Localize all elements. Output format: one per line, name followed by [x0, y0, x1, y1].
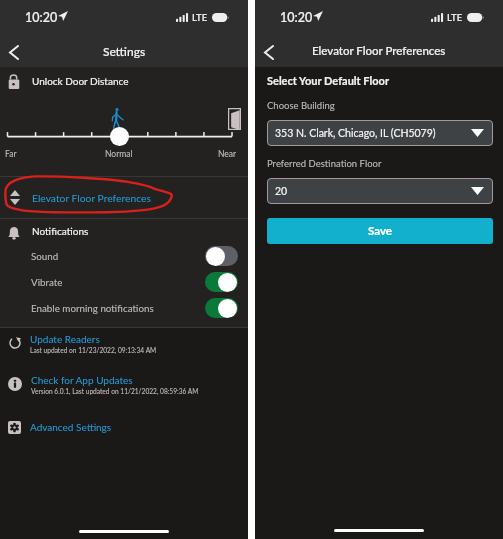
- button[interactable]: 20: [267, 178, 493, 204]
- staticText: Unlock Door Distance: [32, 75, 129, 87]
- button[interactable]: Save: [267, 218, 493, 244]
- staticText: LTE: [447, 12, 463, 23]
- staticText: Elevator Floor Preferences: [32, 192, 151, 204]
- button[interactable]: Back: [255, 34, 283, 67]
- button[interactable]: Sound: [0, 243, 248, 269]
- staticText: Check for App Updates: [31, 374, 133, 386]
- button[interactable]: Back: [0, 34, 28, 67]
- button[interactable]: Check for App Updates: [0, 369, 248, 399]
- staticText: Vibrate: [31, 276, 63, 288]
- button[interactable]: Elevator Floor Preferences: [0, 177, 248, 218]
- staticText: 353 N. Clark, Chicago, IL (CH5079): [275, 127, 436, 140]
- staticText: Advanced Settings: [30, 421, 112, 433]
- staticText: Preferred Destination Floor: [267, 158, 382, 169]
- staticText: 20: [275, 185, 288, 198]
- staticText: Version 6.0.1, Last updated on 11/21/202…: [31, 387, 199, 395]
- staticText: LTE: [192, 12, 208, 23]
- staticText: Normal: [105, 149, 133, 159]
- staticText: Sound: [31, 250, 59, 262]
- staticText: Settings: [103, 44, 146, 58]
- staticText: Save: [368, 224, 392, 238]
- button[interactable]: Update Readers: [0, 328, 248, 358]
- staticText: Notifications: [32, 225, 89, 237]
- staticText: Last updated on 11/23/2022, 09:13:34 AM: [30, 346, 157, 354]
- button[interactable]: Enable morning notifications: [0, 295, 248, 321]
- staticText: Elevator Floor Preferences: [312, 44, 446, 58]
- staticText: 10:20: [280, 10, 313, 25]
- staticText: Update Readers: [30, 333, 100, 345]
- staticText: Choose Building: [267, 100, 335, 111]
- button[interactable]: 353 N. Clark, Chicago, IL (CH5079): [267, 120, 493, 146]
- staticText: Far: [5, 149, 17, 159]
- staticText: 10:20: [25, 10, 58, 25]
- staticText: Enable morning notifications: [31, 302, 154, 314]
- button[interactable]: Advanced Settings: [0, 412, 248, 442]
- button[interactable]: Vibrate: [0, 269, 248, 295]
- staticText: Near: [218, 149, 237, 159]
- staticText: Select Your Default Floor: [267, 74, 389, 87]
